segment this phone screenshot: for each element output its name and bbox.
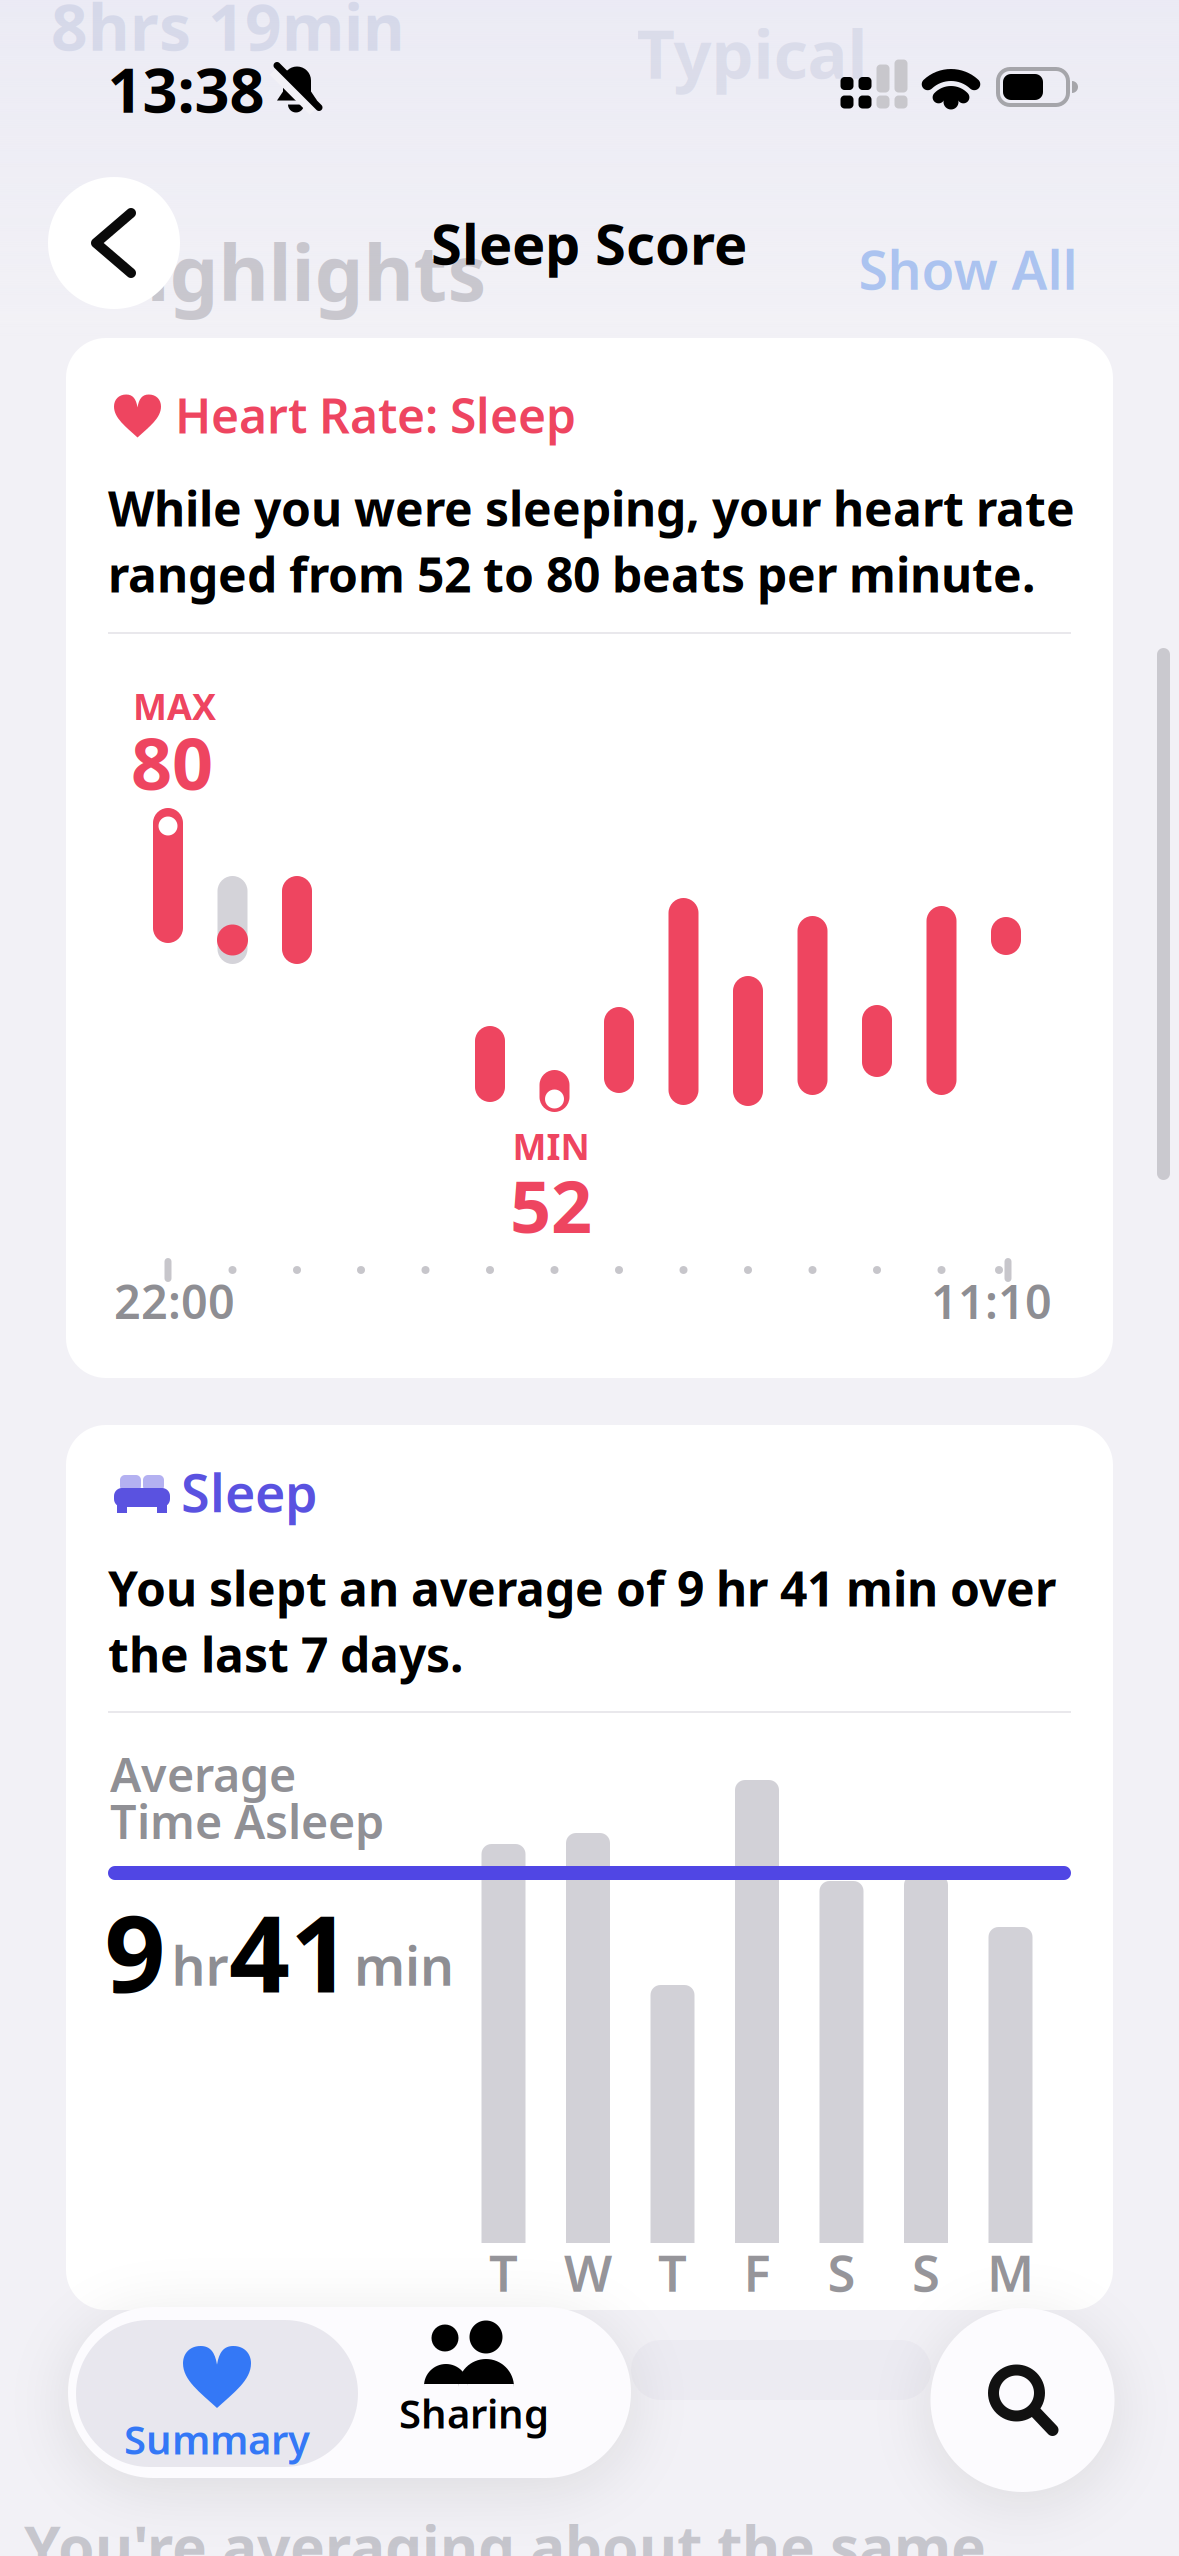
staticText: T (489, 2238, 518, 2306)
staticText: S (912, 2238, 940, 2306)
staticText: T (658, 2238, 687, 2306)
staticText: Sharing (399, 2386, 549, 2439)
staticText: Sleep Score (431, 206, 747, 280)
staticText: 52 (510, 1157, 592, 1253)
staticText: Time Asleep (110, 1790, 384, 1852)
staticText: S (827, 2238, 855, 2306)
staticText: 22:00 (114, 1270, 235, 1332)
staticText: F (743, 2238, 770, 2306)
staticText: Sleep (181, 1457, 318, 1527)
staticText: hr (171, 1930, 228, 2000)
button[interactable]: Sharing (418, 2320, 530, 2467)
staticText: W (564, 2238, 612, 2306)
staticText: 13:38 (107, 48, 264, 130)
staticText: 41 (229, 1880, 351, 2022)
staticText: MIN (512, 1122, 589, 1170)
staticText: ranged from 52 to 80 beats per minute. (108, 542, 1035, 606)
staticText: 8hrs 19min (51, 0, 405, 68)
staticText: While you were sleeping, your heart rate (108, 476, 1075, 540)
staticText: Summary (124, 2412, 310, 2465)
staticText: the last 7 days. (108, 1622, 463, 1686)
button[interactable] (66, 1425, 1113, 2310)
staticText: Typical (636, 9, 867, 97)
button[interactable]: Summary (76, 2320, 358, 2467)
staticText: MAX (133, 682, 216, 730)
staticText: Show All (858, 234, 1077, 304)
staticText: M (987, 2238, 1034, 2306)
staticText: 11:10 (931, 1270, 1052, 1332)
staticText: 9 (104, 1880, 165, 2022)
staticText: You slept an average of 9 hr 41 min over (108, 1556, 1056, 1620)
button[interactable] (930, 2308, 1114, 2492)
button[interactable] (66, 338, 1113, 1378)
button[interactable] (48, 177, 180, 309)
staticText: min (354, 1930, 454, 2000)
staticText: Highlights (87, 220, 486, 322)
staticText: Average (110, 1743, 296, 1805)
staticText: 80 (131, 714, 213, 810)
staticText: You're averaging about the same (24, 2507, 986, 2556)
staticText: Heart Rate: Sleep (175, 383, 576, 447)
